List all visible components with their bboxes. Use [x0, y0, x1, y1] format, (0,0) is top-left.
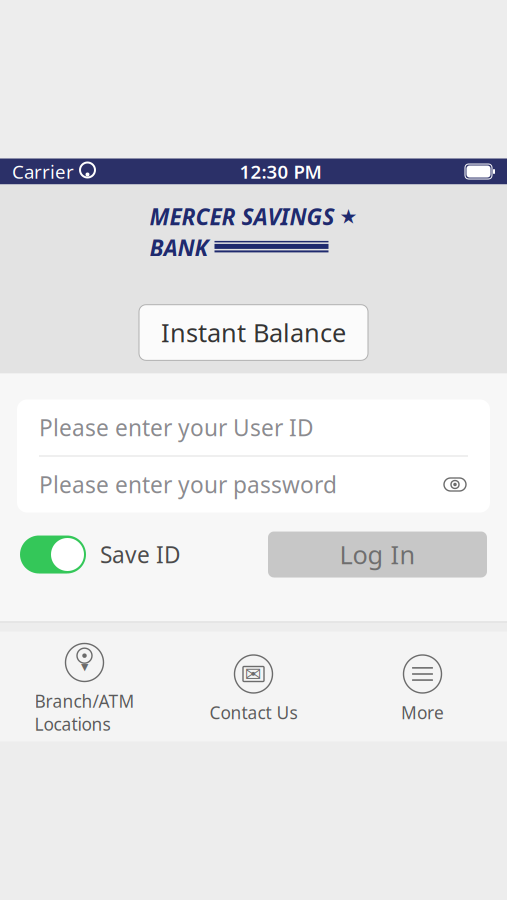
button[interactable]: ✉: [169, 646, 338, 732]
staticText: BANK: [149, 233, 208, 263]
button[interactable]: Instant Balance: [139, 305, 368, 360]
staticText: Save ID: [100, 539, 181, 569]
button[interactable]: More: [338, 646, 507, 732]
staticText: MERCER SAVINGS: [149, 201, 334, 232]
staticText: ▾: [81, 658, 88, 675]
staticText: More: [401, 701, 444, 724]
button[interactable]: Log In: [268, 531, 487, 577]
staticText: Carrier: [12, 159, 74, 184]
staticText: Contact Us: [209, 701, 297, 724]
button[interactable]: Save ID: [20, 535, 181, 573]
staticText: Instant Balance: [161, 316, 346, 349]
staticText: ✉: [245, 663, 262, 685]
staticText: Branch/ATM Locations: [34, 689, 134, 735]
staticText: 12:30 PM: [239, 159, 321, 184]
staticText: ★: [339, 205, 357, 228]
staticText: Log In: [339, 538, 415, 571]
button[interactable]: Show password: [442, 473, 468, 495]
staticText: Please enter your User ID: [39, 412, 314, 442]
button[interactable]: ▾: [0, 634, 169, 743]
staticText: Please enter your password: [39, 469, 337, 499]
